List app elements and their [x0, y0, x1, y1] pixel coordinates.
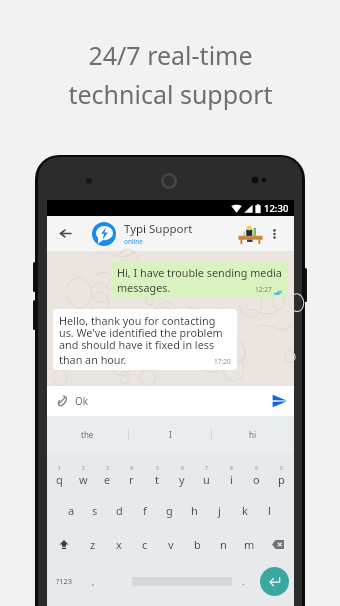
staticText: Hello, thank you for contacting us. We'v… — [59, 313, 223, 352]
staticText: 1 — [58, 465, 61, 472]
staticText: y — [179, 472, 185, 487]
button[interactable]: Shift — [47, 527, 80, 561]
button[interactable]: Back — [47, 216, 83, 251]
staticText: 12:27 — [255, 285, 272, 294]
staticText: d — [116, 503, 123, 518]
staticText: the — [81, 429, 94, 440]
staticText: b — [194, 537, 201, 552]
staticText: l — [268, 503, 271, 518]
staticText: Typi Support — [124, 221, 193, 237]
staticText: online — [124, 237, 143, 246]
button[interactable]: 5 — [144, 458, 169, 494]
button[interactable]: a — [59, 494, 83, 527]
staticText: o — [253, 472, 260, 487]
button[interactable]: 7 — [194, 458, 219, 494]
button[interactable]: the — [47, 416, 128, 453]
button[interactable]: ?123 — [47, 561, 82, 601]
staticText: k — [242, 503, 248, 518]
staticText: 2 — [82, 465, 85, 472]
staticText: 8 — [230, 465, 233, 472]
button[interactable]: 2 — [71, 458, 95, 494]
staticText: 7 — [205, 465, 208, 472]
button[interactable]: Attach — [53, 392, 71, 410]
staticText: 9 — [255, 465, 258, 472]
staticText: Ok — [75, 394, 268, 408]
button[interactable]: x — [106, 527, 132, 561]
staticText: 4 — [130, 465, 133, 472]
staticText: . — [242, 575, 245, 587]
staticText: f — [143, 503, 147, 518]
staticText: 12:30 — [264, 202, 289, 215]
button[interactable]: f — [132, 494, 157, 527]
staticText: than an hour. — [59, 352, 208, 367]
button[interactable]: 0 — [269, 458, 294, 494]
staticText: I — [169, 429, 172, 440]
button[interactable]: hi — [212, 416, 294, 453]
staticText: 24/7 real-time — [88, 38, 253, 72]
staticText: g — [166, 503, 173, 518]
staticText: h — [191, 503, 198, 518]
staticText: s — [92, 503, 98, 518]
staticText: ?123 — [56, 576, 73, 586]
button[interactable]: z — [80, 527, 106, 561]
staticText: n — [220, 537, 227, 552]
staticText: r — [129, 472, 134, 487]
staticText: i — [230, 472, 233, 487]
staticText: technical support — [68, 77, 273, 111]
staticText: e — [104, 472, 111, 487]
button[interactable]: Enter — [254, 561, 294, 601]
button[interactable]: n — [210, 527, 236, 561]
staticText: z — [90, 537, 96, 552]
staticText: messages. — [117, 280, 255, 295]
staticText: p — [278, 472, 285, 487]
staticText: 3 — [106, 465, 109, 472]
staticText: 0 — [280, 465, 283, 472]
button[interactable]: s — [83, 494, 107, 527]
staticText: , — [92, 575, 95, 587]
staticText: 5 — [156, 465, 159, 472]
button[interactable]: m — [236, 527, 262, 561]
button[interactable]: 4 — [119, 458, 144, 494]
staticText: t — [155, 472, 159, 487]
button[interactable]: Backspace — [262, 527, 294, 561]
staticText: x — [116, 537, 122, 552]
button[interactable]: 3 — [95, 458, 119, 494]
button[interactable]: 1 — [47, 458, 71, 494]
staticText: v — [168, 537, 174, 552]
button[interactable]: 9 — [244, 458, 269, 494]
button[interactable]: 6 — [169, 458, 194, 494]
button[interactable]: 8 — [219, 458, 244, 494]
staticText: 17:20 — [214, 357, 231, 366]
button[interactable]: Space — [104, 561, 232, 601]
button[interactable]: More options — [265, 216, 283, 251]
staticText: Hi, I have trouble sending media — [117, 265, 282, 280]
button[interactable]: Send — [268, 390, 290, 412]
staticText: a — [68, 503, 75, 518]
staticText: hi — [249, 429, 257, 440]
button[interactable]: Support agent — [235, 219, 265, 249]
button[interactable]: d — [107, 494, 132, 527]
button[interactable]: , — [82, 561, 104, 601]
button[interactable]: g — [157, 494, 182, 527]
button[interactable]: . — [232, 561, 254, 601]
button[interactable]: j — [207, 494, 232, 527]
button[interactable]: c — [132, 527, 158, 561]
staticText: m — [244, 537, 255, 552]
button[interactable]: I — [129, 416, 211, 453]
staticText: c — [142, 537, 148, 552]
button[interactable]: b — [184, 527, 210, 561]
staticText: j — [218, 503, 221, 518]
button[interactable]: h — [182, 494, 207, 527]
button[interactable]: k — [232, 494, 257, 527]
staticText: u — [203, 472, 210, 487]
staticText: w — [79, 472, 88, 487]
button[interactable]: l — [257, 494, 282, 527]
staticText: 6 — [181, 465, 184, 472]
button[interactable]: v — [158, 527, 184, 561]
staticText: q — [56, 472, 63, 487]
